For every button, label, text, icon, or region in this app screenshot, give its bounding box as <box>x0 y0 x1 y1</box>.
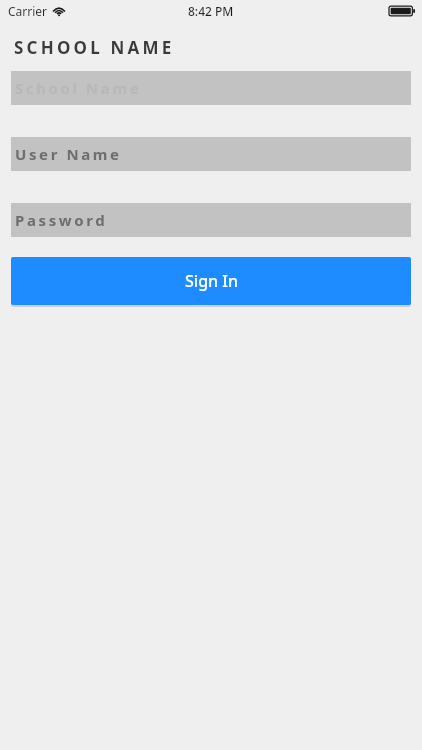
staticText: SCHOOL NAME <box>14 36 175 59</box>
button[interactable]: Sign In <box>11 257 411 305</box>
staticText: Sign In <box>185 270 238 292</box>
staticText: Password <box>15 210 108 230</box>
staticText: User Name <box>15 144 122 164</box>
staticText: School Name <box>15 78 142 98</box>
staticText: Carrier <box>8 3 48 19</box>
button[interactable]: User Name <box>11 137 411 171</box>
button[interactable]: Password <box>11 203 411 237</box>
staticText: 8:42 PM <box>188 3 234 19</box>
